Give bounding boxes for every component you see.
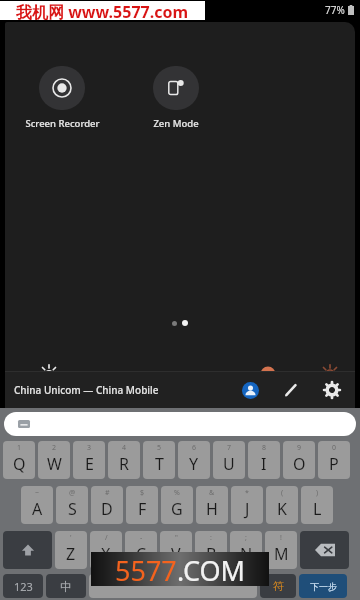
button[interactable]: )	[301, 486, 333, 524]
staticText: 5577	[115, 552, 177, 586]
staticText: H	[206, 498, 218, 520]
staticText: J	[245, 498, 250, 520]
staticText: L	[313, 498, 322, 520]
staticText: 5	[157, 443, 162, 453]
staticText: 9	[297, 443, 302, 453]
staticText: China Unicom — China Mobile	[14, 383, 159, 397]
staticText: W	[47, 453, 62, 475]
staticText: 我机网 www.5577.com	[16, 1, 189, 20]
staticText: U	[223, 453, 235, 475]
button[interactable]: Space	[89, 574, 257, 598]
button[interactable]: :	[195, 531, 227, 569]
staticText: %	[174, 488, 180, 498]
staticText: Screen Recorder	[25, 117, 100, 130]
staticText: ~	[35, 488, 40, 498]
button[interactable]: %	[161, 486, 193, 524]
button[interactable]: 1	[3, 441, 35, 479]
staticText: 3	[87, 443, 92, 453]
button[interactable]: Shift	[3, 531, 52, 569]
staticText: #	[105, 488, 110, 498]
staticText: P	[329, 453, 339, 475]
button[interactable]: ~	[21, 486, 53, 524]
button[interactable]: Settings	[317, 375, 347, 405]
button[interactable]: 5	[143, 441, 175, 479]
button[interactable]: *	[231, 486, 263, 524]
button[interactable]: 0	[318, 441, 350, 479]
staticText: Q	[13, 453, 26, 475]
staticText: .COM	[177, 552, 245, 586]
button[interactable]: 6	[178, 441, 210, 479]
staticText: :	[210, 533, 212, 543]
button[interactable]: Backspace	[300, 531, 349, 569]
staticText: 4	[122, 443, 127, 453]
button[interactable]: /	[90, 531, 122, 569]
button[interactable]: Auto brightness	[317, 361, 343, 387]
staticText: M	[274, 543, 289, 565]
button[interactable]: $	[126, 486, 158, 524]
button[interactable]: Edit	[276, 375, 306, 405]
staticText: 1	[17, 443, 22, 453]
staticText: 77%	[325, 3, 345, 17]
button[interactable]	[77, 363, 303, 385]
staticText: N	[240, 543, 253, 565]
staticText: F	[138, 498, 147, 520]
staticText: X	[101, 543, 111, 565]
button[interactable]: 符	[260, 574, 296, 598]
button[interactable]: -	[125, 531, 157, 569]
button[interactable]: 4	[108, 441, 140, 479]
staticText: 8	[262, 443, 267, 453]
button[interactable]: 8	[248, 441, 280, 479]
staticText: '	[70, 533, 72, 543]
button[interactable]: Screen Recorder	[19, 66, 105, 130]
staticText: Z	[66, 543, 76, 565]
button[interactable]: 9	[283, 441, 315, 479]
staticText: K	[277, 498, 287, 520]
staticText: R	[119, 453, 129, 475]
button[interactable]: 123	[3, 574, 43, 598]
staticText: Y	[189, 453, 199, 475]
staticText: G	[171, 498, 183, 520]
button[interactable]: &	[196, 486, 228, 524]
staticText: V	[171, 543, 181, 565]
button[interactable]: 7	[213, 441, 245, 479]
staticText: C	[136, 543, 147, 565]
staticText: 0	[332, 443, 337, 453]
button[interactable]: 中	[46, 574, 86, 598]
staticText: $	[140, 488, 145, 498]
staticText: !	[280, 533, 282, 543]
button[interactable]: User	[235, 375, 265, 405]
staticText: "	[175, 533, 178, 543]
button[interactable]: 2	[38, 441, 70, 479]
button[interactable]: ;	[230, 531, 262, 569]
staticText: &	[209, 488, 215, 498]
button[interactable]: !	[265, 531, 297, 569]
staticText: 符	[273, 579, 284, 593]
button[interactable]: (	[266, 486, 298, 524]
staticText: E	[85, 453, 94, 475]
button[interactable]: @	[56, 486, 88, 524]
button[interactable]: #	[91, 486, 123, 524]
staticText: 2	[52, 443, 57, 453]
staticText: T	[155, 453, 164, 475]
staticText: *	[245, 488, 249, 498]
button[interactable]: Enter	[299, 574, 347, 598]
staticText: S	[68, 498, 77, 520]
button[interactable]	[4, 412, 356, 436]
staticText: /	[105, 533, 108, 543]
staticText: B	[206, 543, 217, 565]
staticText: 123	[14, 579, 33, 594]
button[interactable]: Zen Mode	[133, 66, 219, 130]
staticText: 6	[192, 443, 197, 453]
staticText: 中	[60, 579, 72, 594]
button[interactable]: China Unicom — China Mobile	[5, 372, 235, 408]
staticText: (	[281, 488, 284, 498]
staticText: Zen Mode	[153, 117, 199, 130]
button[interactable]: "	[160, 531, 192, 569]
staticText: 7	[227, 443, 232, 453]
button[interactable]: '	[55, 531, 87, 569]
button[interactable]: 3	[73, 441, 105, 479]
staticText: )	[316, 488, 319, 498]
staticText: @	[69, 488, 76, 498]
staticText: ;	[245, 533, 247, 543]
staticText: A	[32, 498, 43, 520]
